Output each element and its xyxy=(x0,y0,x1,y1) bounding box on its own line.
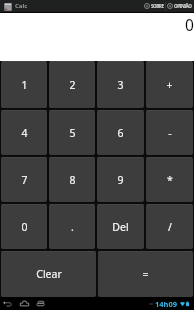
staticText: - xyxy=(168,126,172,140)
button[interactable]: 0 xyxy=(1,204,47,249)
button[interactable]: 4 xyxy=(1,110,47,155)
button[interactable]: Back xyxy=(2,297,12,310)
button[interactable]: Clear xyxy=(1,251,96,297)
staticText: 0 xyxy=(185,14,194,35)
button[interactable]: = xyxy=(98,251,193,297)
staticText: = xyxy=(142,267,149,281)
button[interactable]: * xyxy=(146,157,193,202)
staticText: 3 xyxy=(117,78,124,92)
button[interactable]: 6 xyxy=(97,110,144,155)
button[interactable]: 1 xyxy=(1,61,47,108)
button[interactable]: Recent apps xyxy=(35,297,45,310)
button[interactable]: 7 xyxy=(1,157,47,202)
staticText: Del xyxy=(112,220,129,234)
staticText: * xyxy=(167,173,173,187)
staticText: SOBRE xyxy=(151,3,164,9)
button[interactable]: 5 xyxy=(49,110,95,155)
button[interactable]: . xyxy=(49,204,95,249)
staticText: 7 xyxy=(21,173,28,187)
button[interactable]: - xyxy=(146,110,193,155)
button[interactable]: OPINIÃO xyxy=(166,0,193,12)
staticText: 4 xyxy=(21,126,28,140)
staticText: / xyxy=(168,220,172,234)
button[interactable]: + xyxy=(146,61,193,108)
staticText: 0 xyxy=(21,220,28,234)
button[interactable]: 8 xyxy=(49,157,95,202)
button[interactable]: 9 xyxy=(97,157,144,202)
staticText: OPINIÃO xyxy=(174,3,192,9)
staticText: 9 xyxy=(117,173,124,187)
button[interactable]: SOBRE xyxy=(143,0,165,12)
staticText: Clear xyxy=(36,267,62,281)
staticText: 1 xyxy=(21,78,28,92)
button[interactable]: Del xyxy=(97,204,144,249)
staticText: 2 xyxy=(69,78,76,92)
staticText: . xyxy=(71,220,74,234)
staticText: Calc xyxy=(15,2,28,10)
button[interactable]: Home xyxy=(19,297,29,310)
button[interactable]: / xyxy=(146,204,193,249)
staticText: 8 xyxy=(69,173,76,187)
button[interactable]: 2 xyxy=(49,61,95,108)
staticText: 5 xyxy=(69,126,76,140)
staticText: 14h09 xyxy=(155,299,178,309)
staticText: + xyxy=(166,78,173,92)
button[interactable]: 3 xyxy=(97,61,144,108)
staticText: 6 xyxy=(117,126,124,140)
